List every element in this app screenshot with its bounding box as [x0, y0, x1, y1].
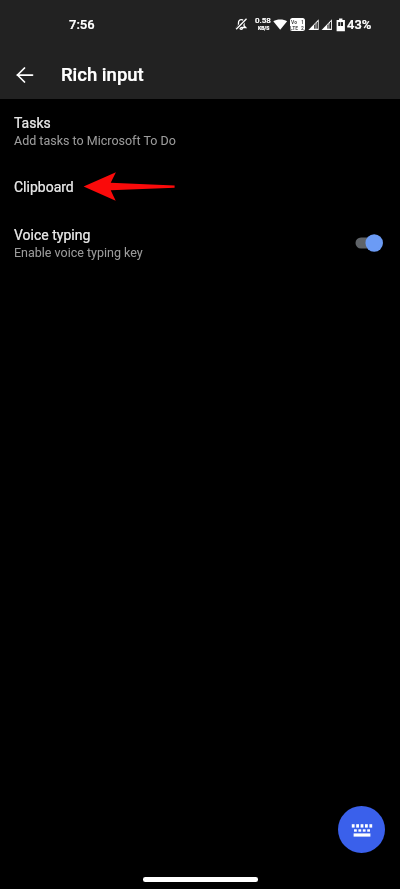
button[interactable]: Toggle voice typing	[345, 229, 386, 257]
button[interactable]: Voice typing	[0, 215, 400, 271]
staticText: Clipboard	[14, 179, 74, 195]
staticText: 2	[301, 25, 304, 31]
staticText: Vo	[291, 19, 297, 25]
button[interactable]: Back	[1, 51, 49, 99]
staticText: Tasks	[14, 115, 51, 131]
staticText: 1	[301, 19, 304, 25]
button[interactable]: Open keyboard	[338, 806, 385, 853]
button[interactable]: Clipboard	[0, 159, 400, 215]
staticText: Voice typing	[14, 227, 91, 243]
staticText: LTE	[290, 25, 299, 31]
staticText: 0.58	[255, 16, 271, 25]
staticText: KB/S	[258, 25, 270, 31]
staticText: 43%	[347, 17, 372, 32]
staticText: Rich input	[61, 64, 144, 86]
staticText: 7:56	[69, 17, 95, 32]
button[interactable]: Tasks	[0, 103, 400, 159]
staticText: Enable voice typing key	[14, 245, 143, 260]
staticText: Add tasks to Microsoft To Do	[14, 133, 176, 148]
